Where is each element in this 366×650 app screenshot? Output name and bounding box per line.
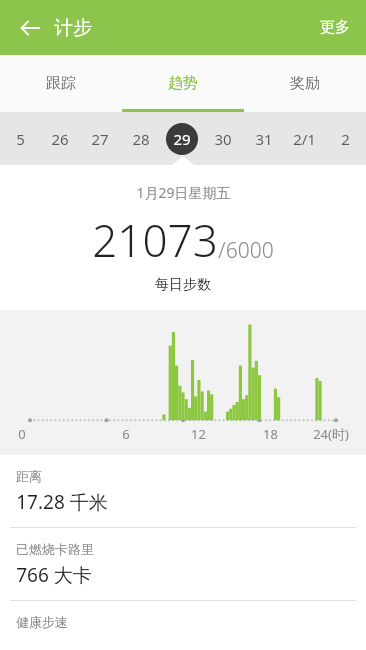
staticText: 已燃烧卡路里 [16,541,94,557]
staticText: 奖励 [290,74,320,93]
staticText: 27 [91,129,109,149]
staticText: 计步 [54,16,92,40]
button[interactable]: 奖励 [244,55,366,112]
button[interactable]: 5 [0,112,40,165]
button[interactable]: 30 [202,112,243,165]
button[interactable]: 2 [325,112,366,165]
button[interactable]: 28 [120,112,161,165]
staticText: 21073 [92,210,218,270]
staticText: 29 [173,129,191,149]
staticText: 30 [214,129,232,149]
button[interactable]: 26 [40,112,80,165]
staticText: 每日步数 [155,276,211,294]
staticText: 24(时) [313,425,349,443]
staticText: 12 [191,425,206,443]
staticText: 28 [132,129,150,149]
staticText: 距离 [16,468,42,484]
button[interactable]: 31 [243,112,284,165]
button[interactable]: 29 [161,112,202,165]
button[interactable]: 距离 [0,455,366,527]
staticText: 1月29日星期五 [136,183,231,202]
button[interactable]: 趋势 [122,55,244,112]
staticText: 0 [18,425,26,443]
staticText: 2 [341,129,350,149]
button[interactable]: 已燃烧卡路里 [0,527,366,600]
staticText: 18 [263,425,278,443]
staticText: 5 [16,129,25,149]
button[interactable]: 跟踪 [0,55,122,112]
button[interactable]: 2/1 [284,112,325,165]
staticText: 31 [255,129,273,149]
staticText: 跟踪 [46,74,76,93]
staticText: 26 [51,129,69,149]
button[interactable]: 更多 [304,4,366,51]
staticText: 766 大卡 [16,562,92,588]
staticText: 趋势 [168,74,198,93]
button[interactable]: 27 [80,112,120,165]
button[interactable]: 健康步速 [0,600,366,650]
button[interactable]: Back [8,6,52,50]
staticText: 更多 [320,18,350,37]
staticText: 健康步速 [16,614,68,630]
staticText: /6000 [218,236,274,265]
staticText: 6 [122,425,130,443]
staticText: 2/1 [293,129,316,149]
staticText: 17.28 千米 [16,489,108,515]
